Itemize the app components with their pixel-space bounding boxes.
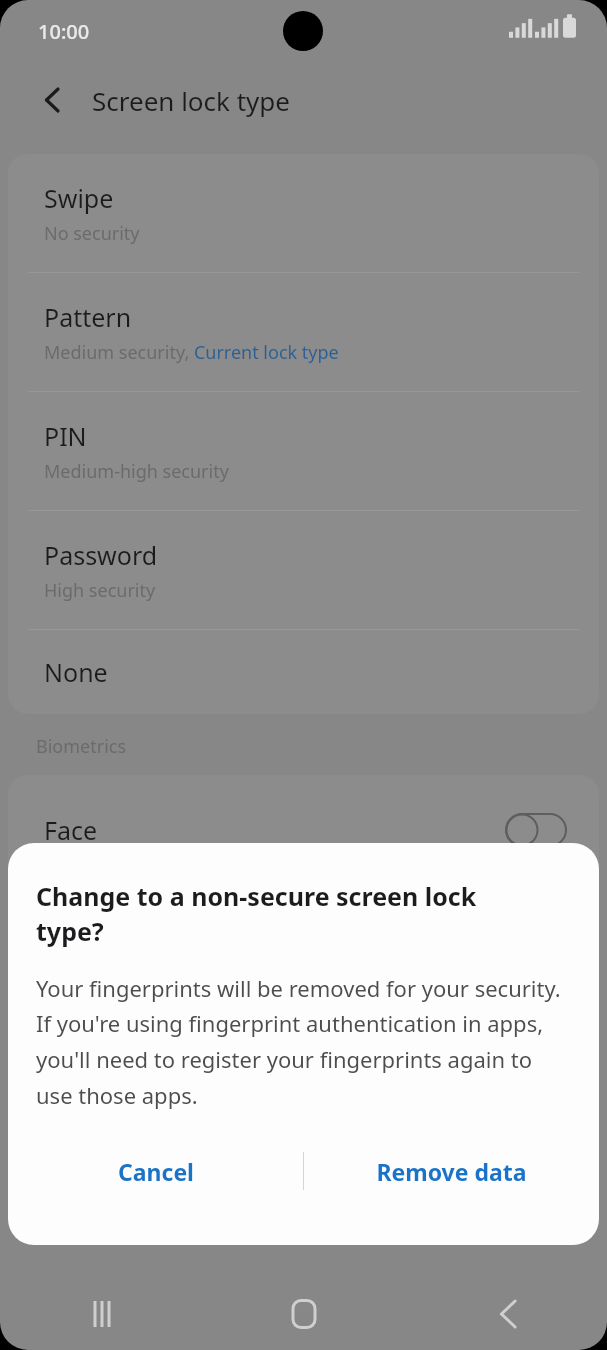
staticText: Remove data [376,1156,527,1187]
button[interactable]: Cancel [8,1133,303,1209]
button[interactable]: Home [203,1279,405,1349]
staticText: Pattern [44,300,132,334]
staticText: Cancel [118,1156,194,1187]
staticText: Screen lock type [92,83,290,118]
staticText: No security [44,221,140,246]
button[interactable]: Back [26,76,74,124]
staticText: High security [44,578,156,603]
button[interactable]: None [8,630,599,714]
staticText: PIN [44,419,87,453]
button[interactable]: Recents [0,1279,203,1349]
button[interactable]: Remove data [304,1133,599,1209]
staticText: 10:00 [38,18,90,45]
button[interactable]: Face [8,775,599,885]
button[interactable]: Password [8,511,599,629]
staticText: Medium security, Current lock type [44,340,339,365]
button[interactable]: Pattern [8,273,599,391]
staticText: None [44,655,108,689]
staticText: Swipe [44,181,114,215]
staticText: Your fingerprints will be removed for yo… [36,973,571,1111]
staticText: Medium-high security [44,459,229,484]
staticText: Password [44,538,158,572]
staticText: Change to a non-secure screen lock type? [36,879,547,949]
button[interactable]: PIN [8,392,599,510]
button[interactable]: Back [405,1279,607,1349]
button[interactable]: Swipe [8,154,599,272]
staticText: Biometrics [36,734,127,759]
staticText: Face [44,813,98,847]
